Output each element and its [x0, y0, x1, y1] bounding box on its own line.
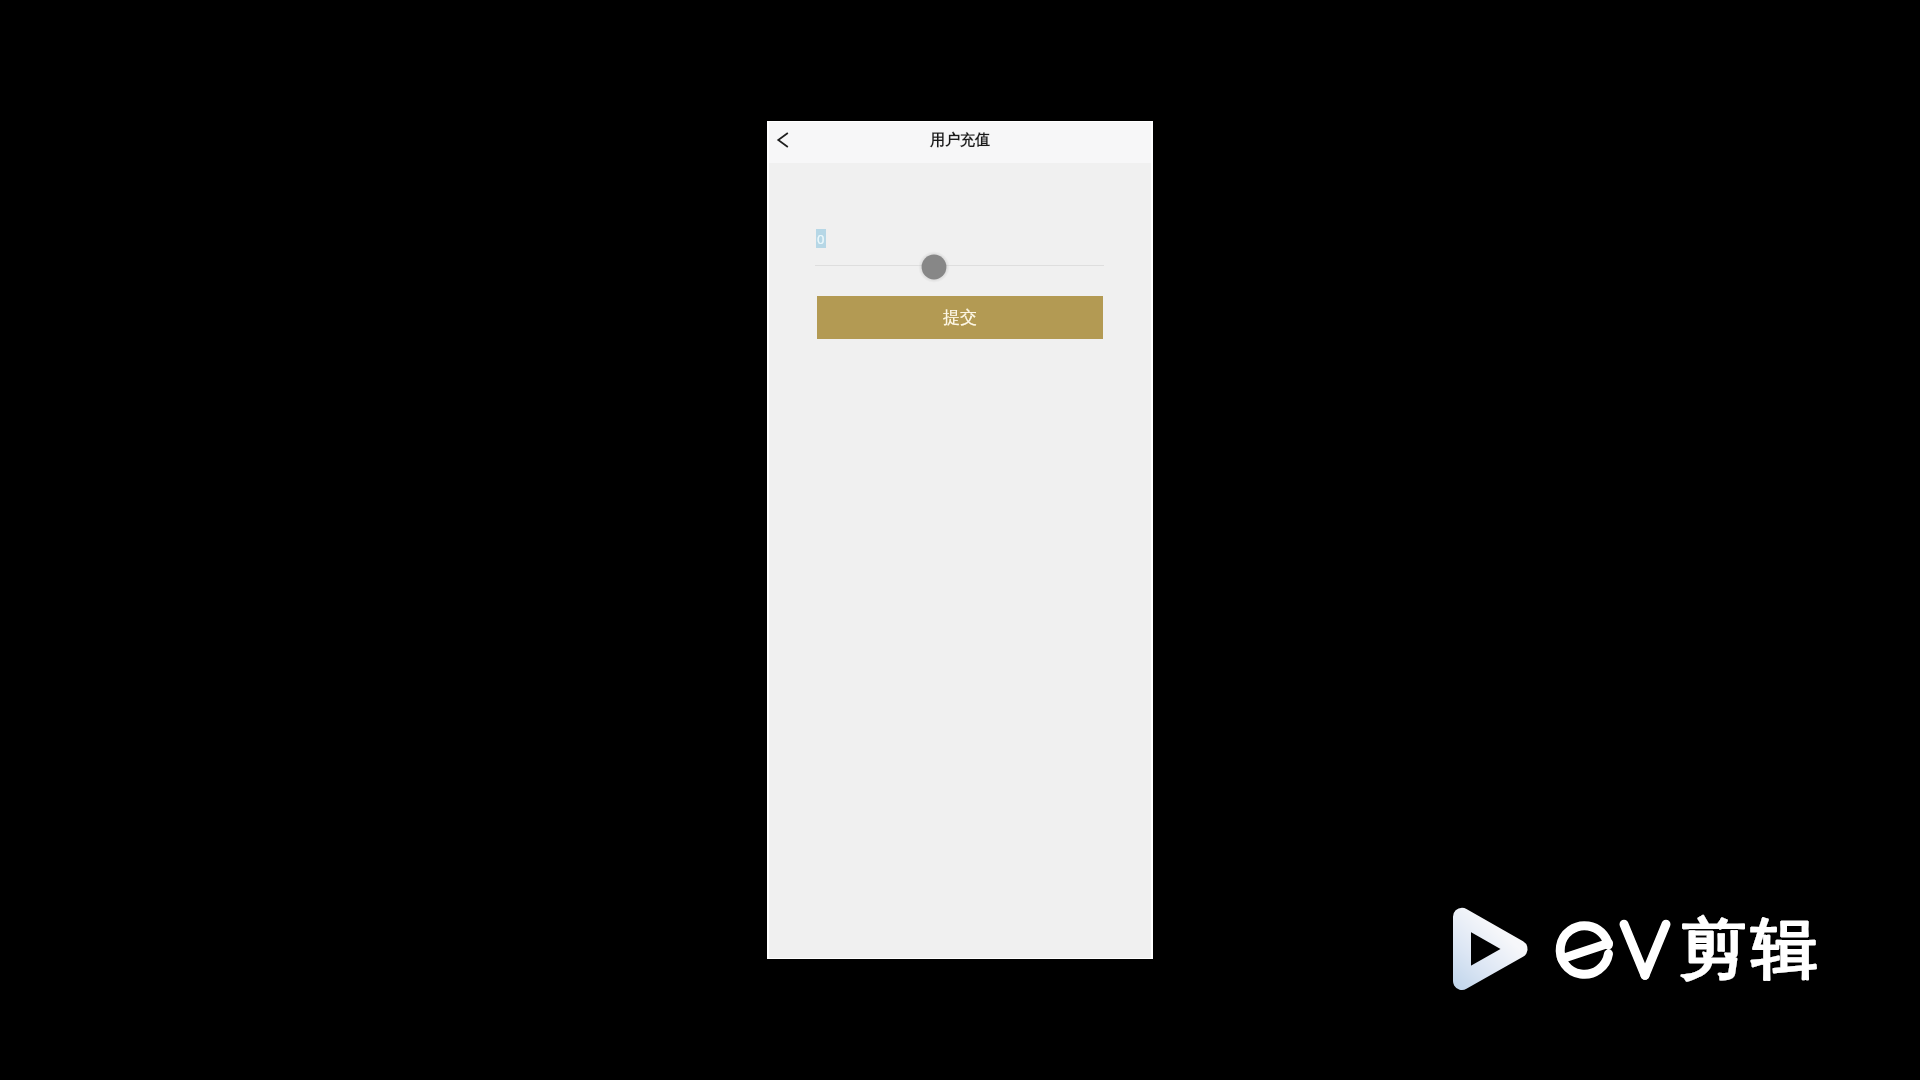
staticText: 剪辑 [1677, 909, 1820, 991]
button[interactable]: Amount input [816, 229, 826, 248]
button[interactable]: 提交 [817, 296, 1103, 339]
staticText: 提交 [943, 307, 977, 328]
staticText: 剪辑 [1677, 909, 1820, 991]
button[interactable]: Recharge amount slider [815, 248, 1104, 282]
button[interactable]: Back [768, 122, 804, 158]
staticText: 0 [817, 230, 825, 248]
staticText: 用户充值 [930, 131, 990, 150]
